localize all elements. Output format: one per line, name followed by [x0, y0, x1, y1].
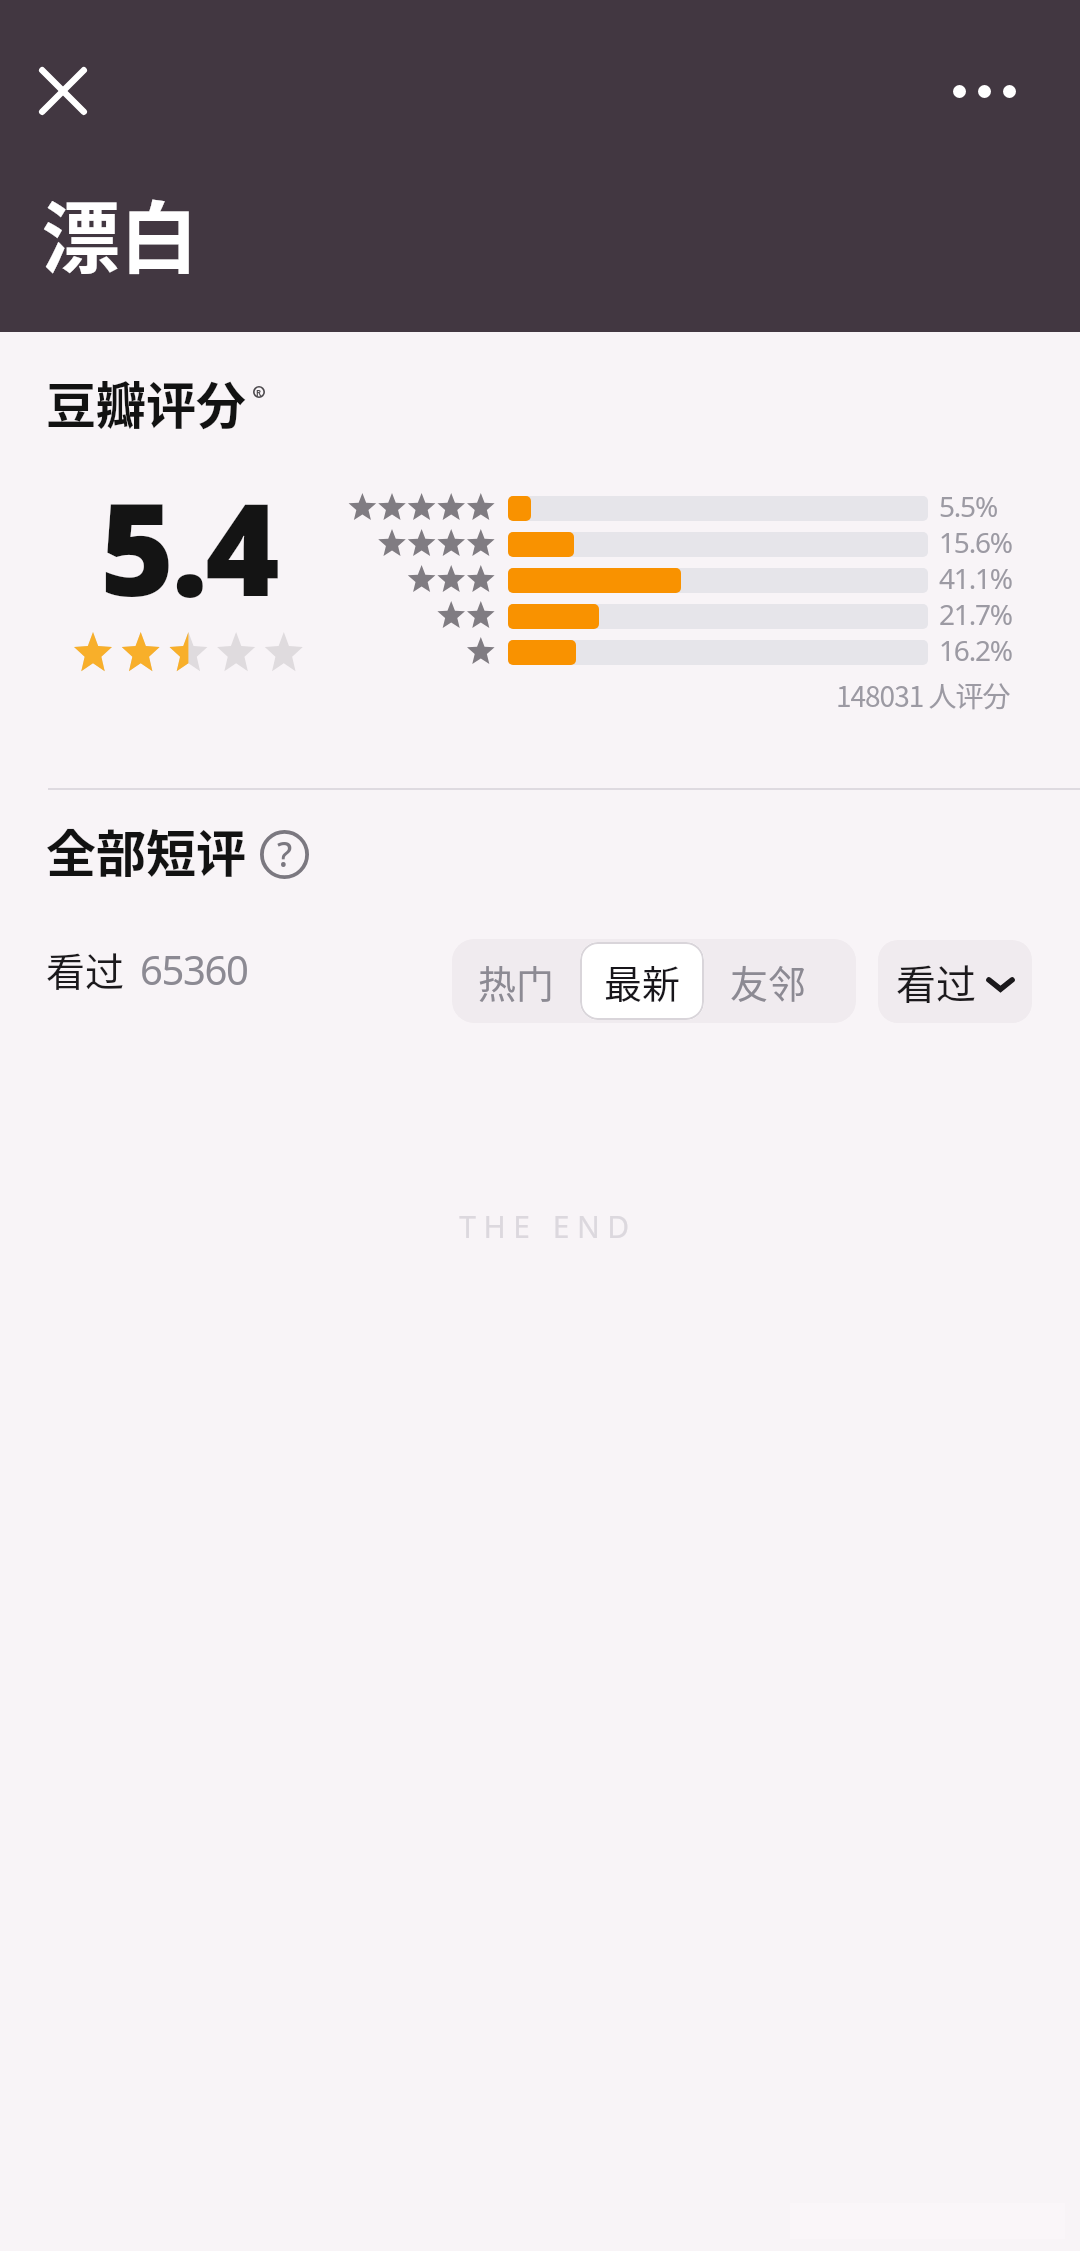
button[interactable]: 友邻 — [704, 942, 832, 1020]
staticText: 148031 人评分 — [836, 675, 1010, 716]
staticText: R — [256, 387, 262, 398]
staticText: 热门 — [478, 954, 555, 1009]
button[interactable]: Close — [23, 51, 102, 130]
staticText: 友邻 — [730, 954, 807, 1009]
staticText: 15.6% — [939, 523, 1012, 561]
staticText: THE END — [8, 1206, 1080, 1247]
button[interactable]: 最新 — [580, 942, 704, 1020]
staticText: 16.2% — [939, 631, 1012, 669]
staticText: 21.7% — [939, 595, 1012, 633]
button[interactable]: More options — [924, 52, 1044, 130]
staticText: 漂白 — [42, 177, 199, 290]
staticText: 65360 — [140, 942, 248, 996]
button[interactable]: Help — [260, 830, 309, 879]
staticText: 看过 — [46, 941, 125, 997]
staticText: 5.4 — [100, 460, 277, 633]
button[interactable]: 看过 — [878, 940, 1032, 1023]
staticText: 看过 — [896, 953, 976, 1011]
staticText: 5.5% — [939, 487, 998, 525]
staticText: 全部短评 — [46, 814, 246, 886]
staticText: 41.1% — [939, 559, 1012, 597]
button[interactable]: 热门 — [452, 942, 580, 1020]
staticText: 最新 — [604, 954, 681, 1009]
staticText: 豆瓣评分 — [46, 366, 246, 438]
staticText: ? — [277, 831, 293, 877]
